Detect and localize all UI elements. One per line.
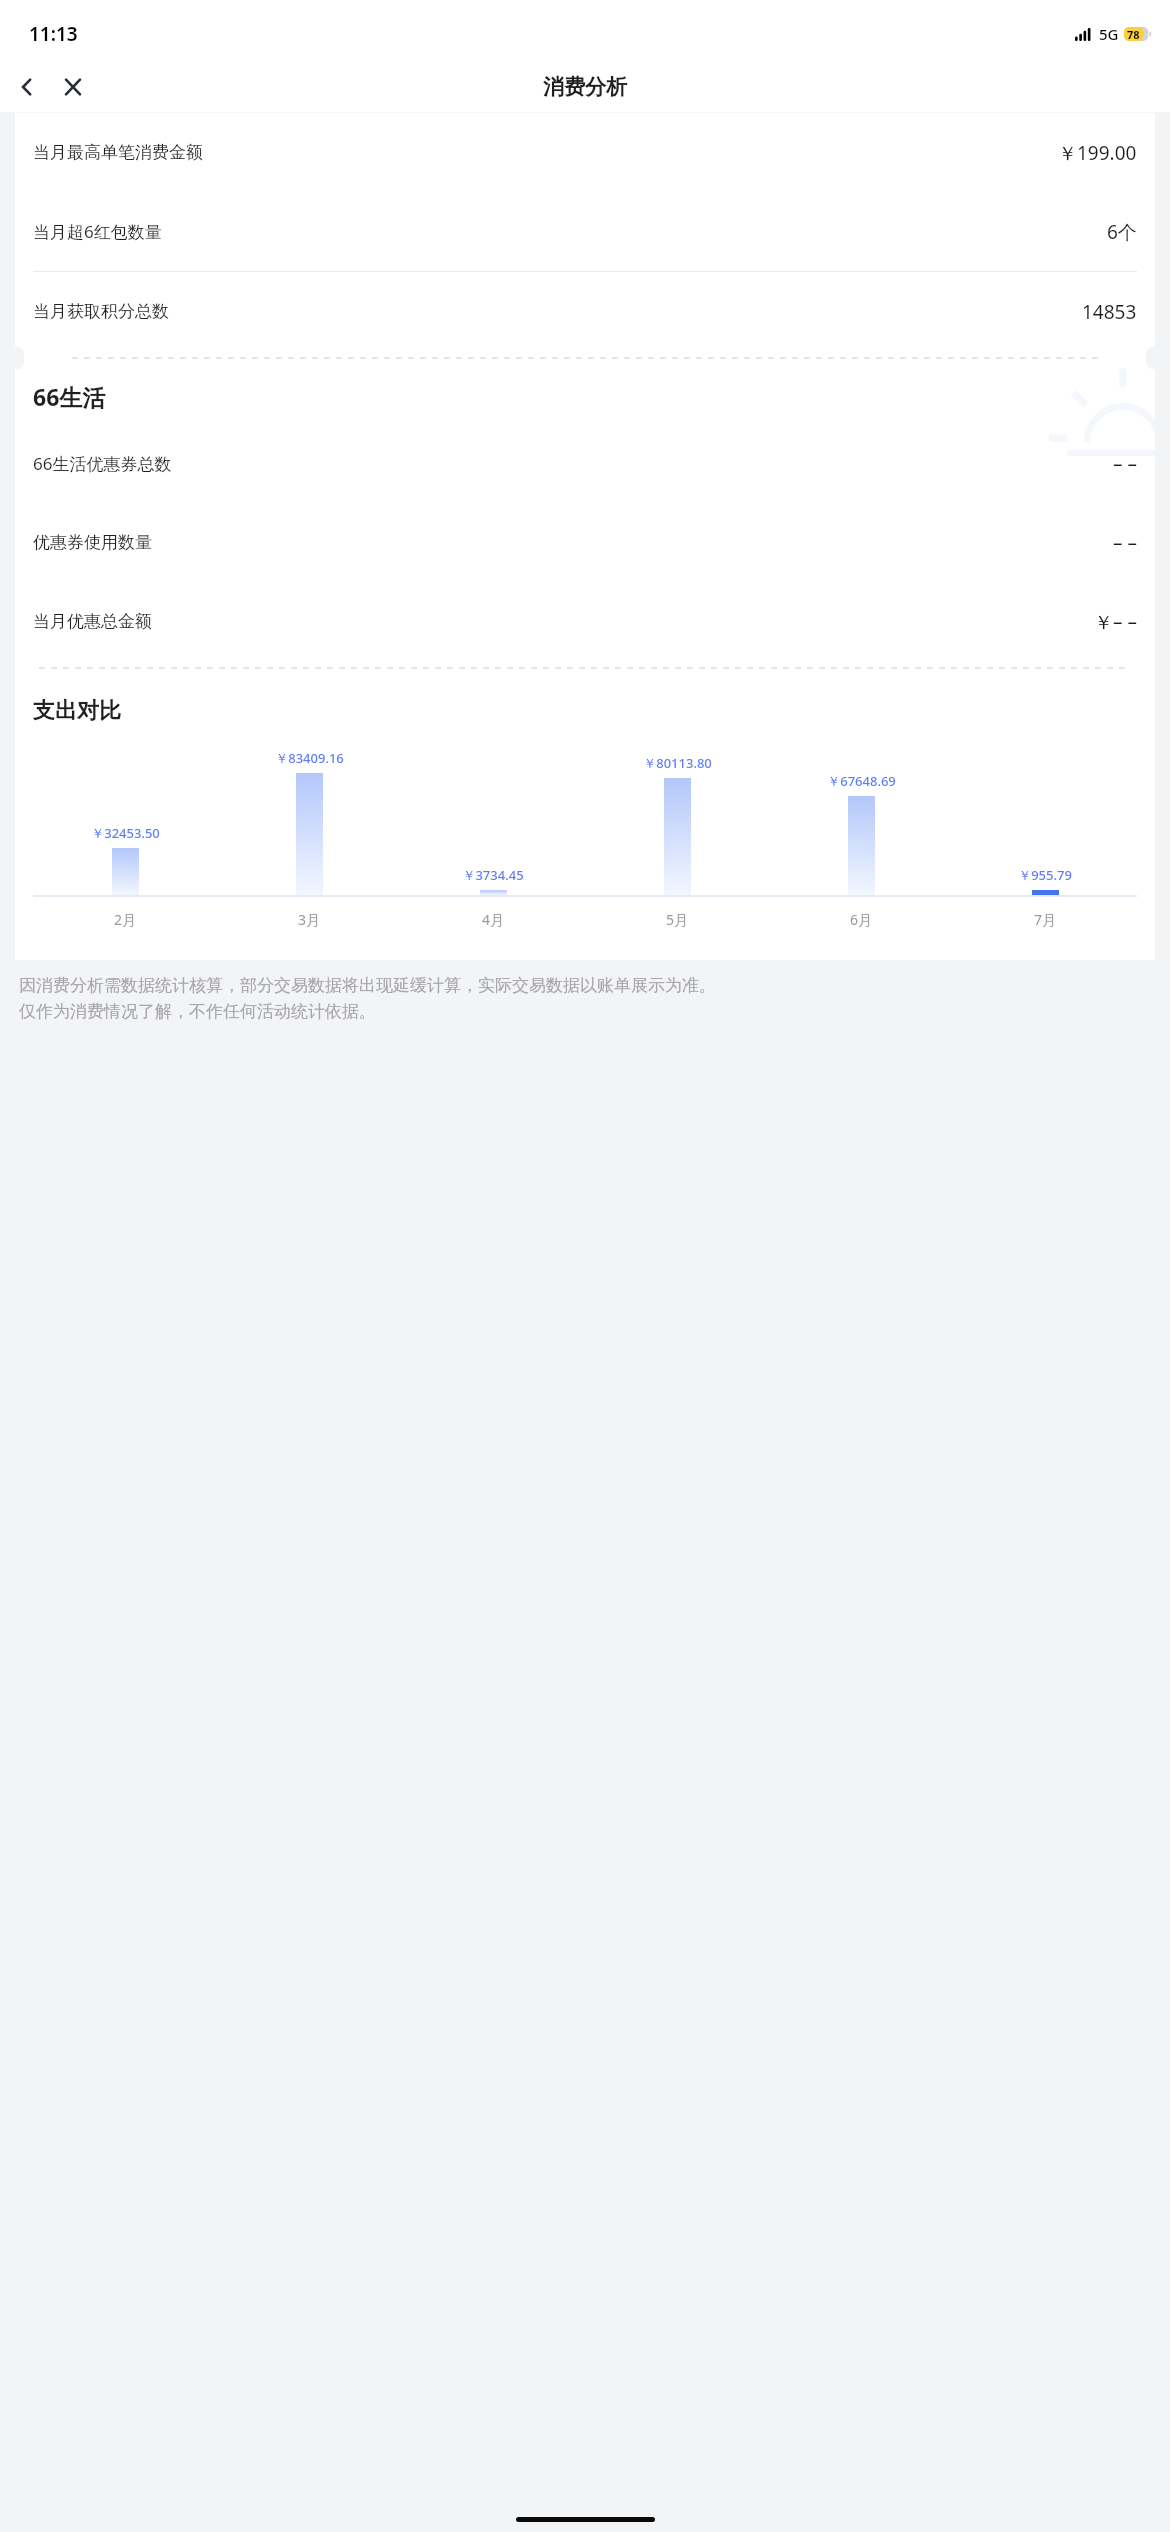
- staticText: 5月: [666, 910, 689, 929]
- staticText: ￥83409.16: [275, 749, 344, 767]
- button[interactable]: 返回: [4, 64, 50, 110]
- button[interactable]: 当月最高单笔消费金额: [15, 113, 1155, 192]
- staticText: 66生活优惠券总数: [33, 452, 172, 475]
- staticText: 优惠券使用数量: [33, 532, 152, 553]
- staticText: 因消费分析需数据统计核算，部分交易数据将出现延缓计算，实际交易数据以账单展示为准…: [19, 975, 716, 996]
- staticText: ￥67648.69: [827, 772, 896, 790]
- staticText: 当月最高单笔消费金额: [33, 142, 203, 163]
- staticText: ￥199.00: [1058, 140, 1137, 166]
- button[interactable]: 优惠券使用数量: [15, 503, 1155, 582]
- staticText: 7月: [1034, 910, 1057, 929]
- button[interactable]: 当月超6红包数量: [15, 192, 1155, 271]
- staticText: 当月优惠总金额: [33, 611, 152, 632]
- staticText: – –: [1113, 530, 1137, 556]
- staticText: 14853: [1082, 299, 1137, 325]
- staticText: 3月: [298, 910, 321, 929]
- button[interactable]: 当月优惠总金额: [15, 582, 1155, 661]
- staticText: 仅作为消费情况了解，不作任何活动统计依据。: [19, 1001, 376, 1022]
- staticText: 2月: [114, 910, 137, 929]
- staticText: ￥955.79: [1018, 866, 1072, 884]
- staticText: 66生活: [33, 381, 106, 412]
- staticText: 支出对比: [33, 697, 121, 725]
- staticText: 5G: [1099, 24, 1119, 44]
- staticText: 11:13: [29, 21, 78, 47]
- staticText: 4月: [482, 910, 505, 929]
- staticText: ￥– –: [1094, 609, 1137, 635]
- staticText: 消费分析: [543, 74, 627, 100]
- staticText: 6个: [1107, 219, 1137, 245]
- button[interactable]: 关闭: [50, 64, 96, 110]
- staticText: – –: [1113, 451, 1137, 477]
- staticText: 当月超6红包数量: [33, 220, 162, 243]
- staticText: ￥32453.50: [91, 824, 160, 842]
- staticText: 当月获取积分总数: [33, 301, 169, 322]
- button[interactable]: 当月获取积分总数: [15, 272, 1155, 351]
- staticText: 6月: [850, 910, 873, 929]
- button[interactable]: 66生活优惠券总数: [15, 424, 1155, 503]
- staticText: ￥3734.45: [462, 866, 524, 884]
- staticText: ￥80113.80: [643, 754, 712, 772]
- staticText: 78: [1127, 27, 1140, 41]
